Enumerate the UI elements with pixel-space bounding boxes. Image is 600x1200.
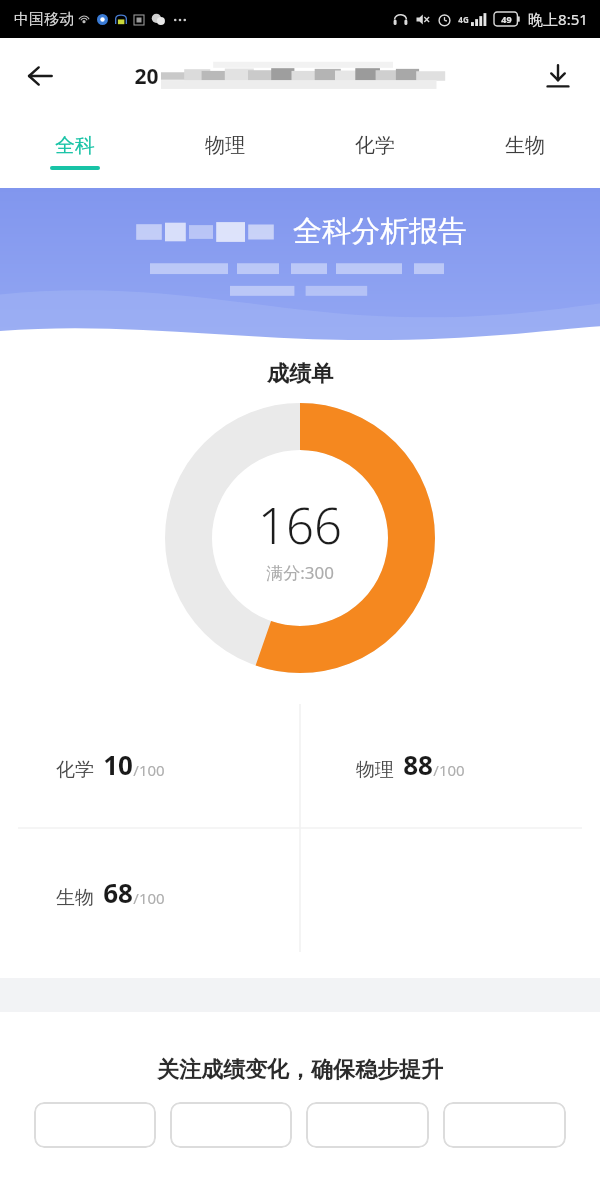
staticText: 20	[134, 62, 159, 91]
staticText: 化学	[56, 758, 94, 782]
staticText: 生物	[505, 133, 545, 158]
staticText: 88	[403, 747, 433, 782]
staticText: 物理	[205, 133, 245, 158]
staticText: 关注成绩变化，确保稳步提升	[157, 1056, 443, 1084]
button[interactable]: 物理	[300, 700, 600, 828]
staticText: 化学	[355, 133, 395, 158]
staticText: 生物	[56, 886, 94, 910]
button[interactable]: 生物	[0, 828, 300, 956]
button[interactable]: Download	[534, 52, 582, 100]
staticText: 中国移动	[14, 10, 74, 29]
button[interactable]: Filter chip	[306, 1102, 429, 1148]
staticText: /100	[133, 760, 165, 780]
button[interactable]: 生物	[450, 114, 600, 188]
staticText: 10	[103, 747, 133, 782]
staticText: /100	[433, 760, 465, 780]
button[interactable]: 化学	[300, 114, 450, 188]
staticText: 49	[501, 13, 512, 25]
staticText: 成绩单	[267, 360, 333, 388]
staticText: 物理	[356, 758, 394, 782]
staticText: 全科	[55, 133, 95, 158]
button[interactable]: 化学	[0, 700, 300, 828]
staticText: 4G	[458, 14, 469, 25]
button[interactable]: Filter chip	[34, 1102, 156, 1148]
staticText: /100	[133, 888, 165, 908]
staticText: 全科分析报告	[293, 213, 467, 250]
button[interactable]: 物理	[150, 114, 300, 188]
button[interactable]: Filter chip	[443, 1102, 566, 1148]
staticText: 68	[103, 875, 133, 910]
button[interactable]: Back	[16, 52, 64, 100]
staticText: 满分:300	[266, 561, 334, 584]
button[interactable]: Filter chip	[170, 1102, 292, 1148]
staticText: 166	[258, 492, 342, 559]
button[interactable]: 全科	[0, 114, 150, 188]
staticText: 晚上8:51	[528, 9, 588, 29]
